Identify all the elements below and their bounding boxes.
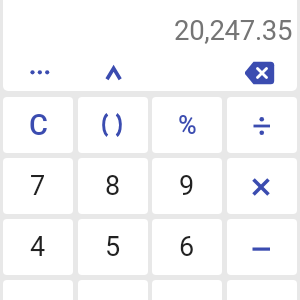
button[interactable] bbox=[97, 59, 126, 87]
button[interactable] bbox=[227, 97, 297, 153]
staticText: 5 bbox=[105, 231, 121, 263]
button[interactable] bbox=[227, 158, 297, 214]
staticText: 9 bbox=[179, 170, 195, 202]
button[interactable]: 9 bbox=[152, 158, 222, 214]
staticText: 6 bbox=[179, 231, 195, 263]
button[interactable]: 6 bbox=[152, 219, 222, 275]
button[interactable] bbox=[240, 57, 280, 89]
button[interactable]: 7 bbox=[3, 158, 73, 214]
staticText: 4 bbox=[30, 231, 46, 263]
staticText: % bbox=[178, 110, 197, 140]
button[interactable]: 8 bbox=[78, 158, 148, 214]
button[interactable]: 4 bbox=[3, 219, 73, 275]
staticText: C bbox=[29, 108, 48, 142]
button[interactable]: 5 bbox=[78, 219, 148, 275]
staticText: 20,247.35 bbox=[174, 14, 293, 46]
button[interactable]: C bbox=[3, 97, 73, 153]
button[interactable] bbox=[78, 97, 148, 153]
button[interactable]: % bbox=[152, 97, 222, 153]
staticText: 8 bbox=[105, 170, 121, 202]
button[interactable] bbox=[24, 58, 56, 86]
button[interactable] bbox=[227, 219, 297, 275]
staticText: 7 bbox=[30, 170, 46, 202]
